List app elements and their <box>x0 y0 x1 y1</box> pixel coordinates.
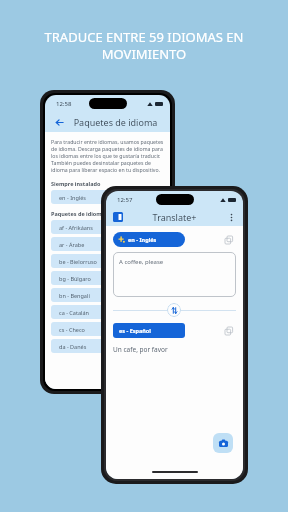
staticText: Paquetes de idioma disponibles <box>51 210 138 217</box>
staticText: bg - Búlgaro <box>59 275 91 282</box>
staticText: Para traducir entre idiomas, usamos paqu… <box>51 138 164 173</box>
staticText: cs - Checo <box>59 326 85 333</box>
button[interactable]: en - Inglés <box>51 190 164 204</box>
staticText: Translate+ <box>125 211 224 223</box>
button[interactable]: Back <box>51 114 67 130</box>
staticText: bn - Bengalí <box>59 292 90 299</box>
staticText: da - Danés <box>59 343 87 350</box>
button[interactable]: Copy <box>222 233 236 247</box>
staticText: 12:57 <box>117 196 133 204</box>
button[interactable]: ca - Catalán <box>51 305 164 319</box>
staticText: Un cafe, por favor <box>113 345 168 354</box>
staticText: be - Bielorruso <box>59 258 97 265</box>
staticText: Paquetes de idioma <box>67 116 164 128</box>
button[interactable]: Camera translate <box>213 433 233 453</box>
button[interactable]: cs - Checo <box>51 322 164 336</box>
staticText: A coffee, please <box>119 258 164 266</box>
button[interactable]: Swap languages <box>167 303 181 317</box>
button[interactable]: Copy translation <box>222 324 236 338</box>
button[interactable]: da - Danés <box>51 339 164 353</box>
staticText: TRADUCE ENTRE 59 IDIOMAS EN MOVIMIENTO <box>34 28 254 63</box>
staticText: ar - Árabe <box>59 241 85 248</box>
staticText: 12:58 <box>56 100 72 108</box>
button[interactable]: bn - Bengalí <box>51 288 164 302</box>
button[interactable]: More options <box>224 210 238 224</box>
staticText: af - Afrikáans <box>59 224 93 231</box>
staticText: en - Inglés <box>128 236 157 243</box>
button[interactable]: af - Afrikáans <box>51 220 164 234</box>
button[interactable]: en - Inglés <box>113 232 185 247</box>
button[interactable]: bg - Búlgaro <box>51 271 164 285</box>
button[interactable]: ar - Árabe <box>51 237 164 251</box>
button[interactable]: be - Bielorruso <box>51 254 164 268</box>
staticText: Siempre instalado <box>51 180 101 187</box>
button[interactable]: es - Español <box>113 323 185 338</box>
staticText: en - Inglés <box>59 194 86 201</box>
button[interactable]: A coffee, please <box>113 252 236 297</box>
button[interactable]: Language <box>111 210 125 224</box>
staticText: es - Español <box>119 327 151 334</box>
staticText: ca - Catalán <box>59 309 89 316</box>
